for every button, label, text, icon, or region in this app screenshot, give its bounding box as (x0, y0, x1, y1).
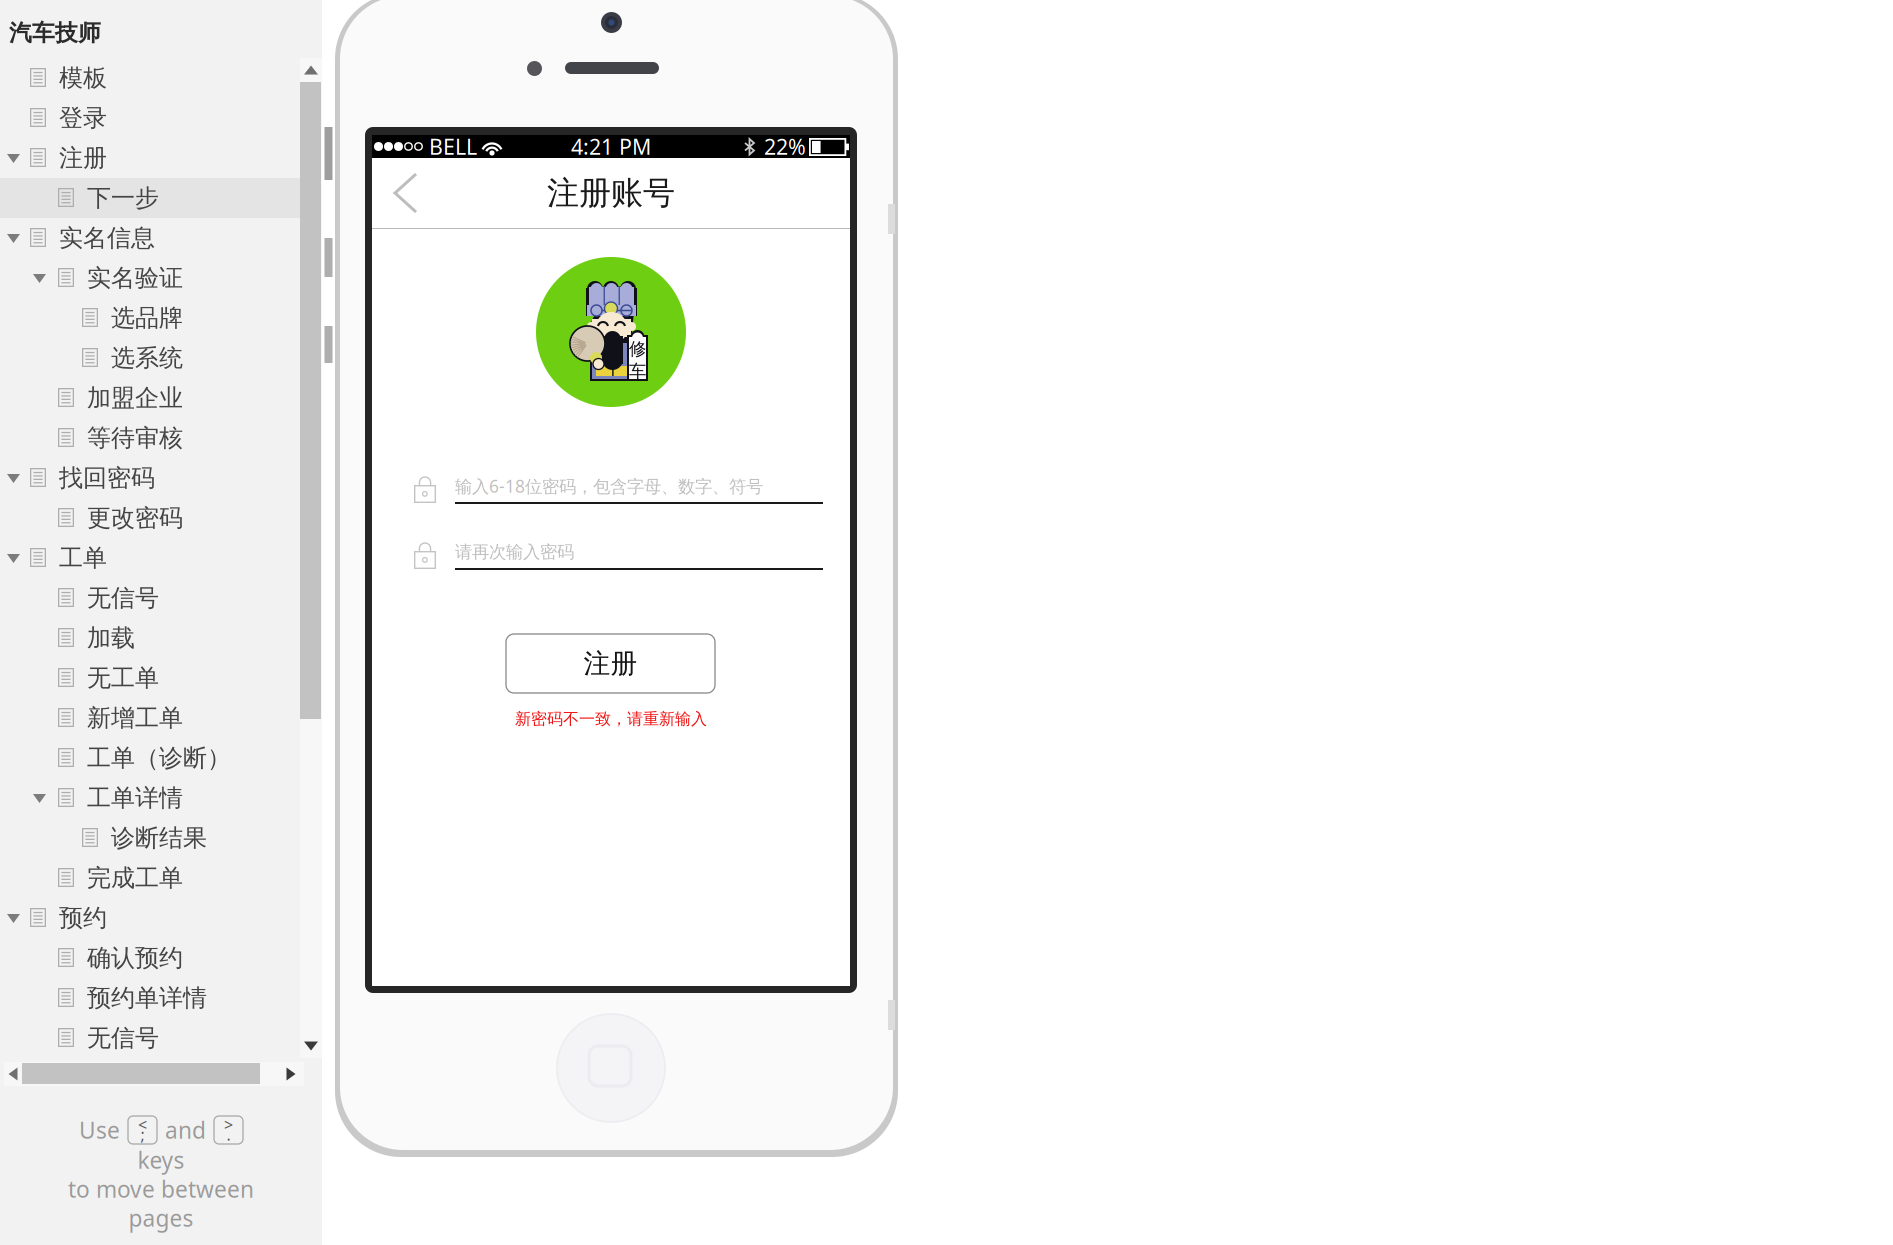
button[interactable]: 预约 (0, 898, 322, 938)
staticText: 下一步 (87, 183, 159, 213)
button[interactable]: 实名验证 (0, 258, 322, 298)
staticText: 确认预约 (87, 943, 183, 973)
button[interactable]: 完成工单 (0, 858, 322, 898)
button[interactable]: 注册 (0, 138, 322, 178)
staticText: 工单 (59, 543, 107, 573)
staticText: 加载 (87, 623, 135, 653)
button[interactable]: 下一步 (0, 178, 322, 218)
staticText: 登录 (59, 103, 107, 133)
button[interactable]: 预约单详情 (0, 978, 322, 1018)
staticText: 注册 (59, 143, 107, 173)
staticText: 修 (629, 338, 646, 359)
button[interactable]: 选系统 (0, 338, 322, 378)
staticText: 模板 (59, 63, 107, 93)
button[interactable]: Scroll down (300, 1034, 322, 1058)
button[interactable]: 更改密码 (0, 498, 322, 538)
button[interactable]: 无信号 (0, 578, 322, 618)
staticText: 无信号 (87, 1023, 159, 1053)
button[interactable]: 新增工单 (0, 698, 322, 738)
button[interactable]: Scroll up (300, 58, 322, 82)
button[interactable]: 登录 (0, 98, 322, 138)
staticText: 诊断结果 (111, 823, 207, 853)
staticText: 等待审核 (87, 423, 183, 453)
staticText: ; (140, 1124, 144, 1145)
staticText: 加盟企业 (87, 383, 183, 413)
button[interactable]: Scroll left (4, 1062, 22, 1086)
staticText: 完成工单 (87, 863, 183, 893)
staticText: 实名信息 (59, 223, 155, 253)
staticText: . (226, 1124, 230, 1145)
staticText: 选系统 (111, 343, 183, 373)
staticText: 车 (629, 360, 646, 382)
button[interactable]: 诊断结果 (0, 818, 322, 858)
button[interactable]: 模板 (0, 58, 322, 98)
staticText: 注册账号 (547, 173, 675, 213)
staticText: 预约单详情 (87, 983, 207, 1013)
staticText: 工单详情 (87, 783, 183, 813)
button[interactable]: 实名信息 (0, 218, 322, 258)
staticText: 输入6-18位密码，包含字母、数字、符号 (455, 474, 763, 497)
staticText: 无工单 (87, 663, 159, 693)
button[interactable]: 加盟企业 (0, 378, 322, 418)
button[interactable]: 无工单 (0, 658, 322, 698)
button[interactable]: 注册 (506, 634, 715, 693)
staticText: 找回密码 (59, 463, 155, 493)
staticText: 汽车技师 (9, 19, 101, 47)
button[interactable]: 工单 (0, 538, 322, 578)
staticText: 选品牌 (111, 303, 183, 333)
staticText: 实名验证 (87, 263, 183, 293)
staticText: BELL (429, 132, 477, 161)
button[interactable]: 工单详情 (0, 778, 322, 818)
staticText: 新增工单 (87, 703, 183, 733)
staticText: 更改密码 (87, 503, 183, 533)
staticText: 4:21 PM (571, 132, 651, 161)
staticText: 工单（诊断） (87, 743, 231, 773)
staticText: and (165, 1115, 206, 1145)
staticText: Use (79, 1115, 120, 1145)
button[interactable]: Home (557, 1014, 665, 1122)
button[interactable]: 加载 (0, 618, 322, 658)
button[interactable]: 等待审核 (0, 418, 322, 458)
button[interactable]: Back (372, 158, 428, 228)
button[interactable]: 确认预约 (0, 938, 322, 978)
button[interactable]: 工单（诊断） (0, 738, 322, 778)
staticText: 无信号 (87, 583, 159, 613)
staticText: > (224, 1114, 233, 1135)
staticText: pages (128, 1203, 193, 1233)
button[interactable]: 无信号 (0, 1018, 322, 1058)
staticText: to move between (68, 1174, 254, 1204)
staticText: 注册 (583, 647, 637, 680)
staticText: < (138, 1114, 147, 1135)
staticText: keys (137, 1145, 184, 1175)
staticText: 22% (764, 132, 806, 161)
staticText: 预约 (59, 903, 107, 933)
button[interactable]: 找回密码 (0, 458, 322, 498)
button[interactable]: Scroll right (282, 1062, 300, 1086)
button[interactable]: 选品牌 (0, 298, 322, 338)
staticText: 请再次输入密码 (455, 541, 574, 563)
staticText: 新密码不一致，请重新输入 (515, 709, 707, 729)
